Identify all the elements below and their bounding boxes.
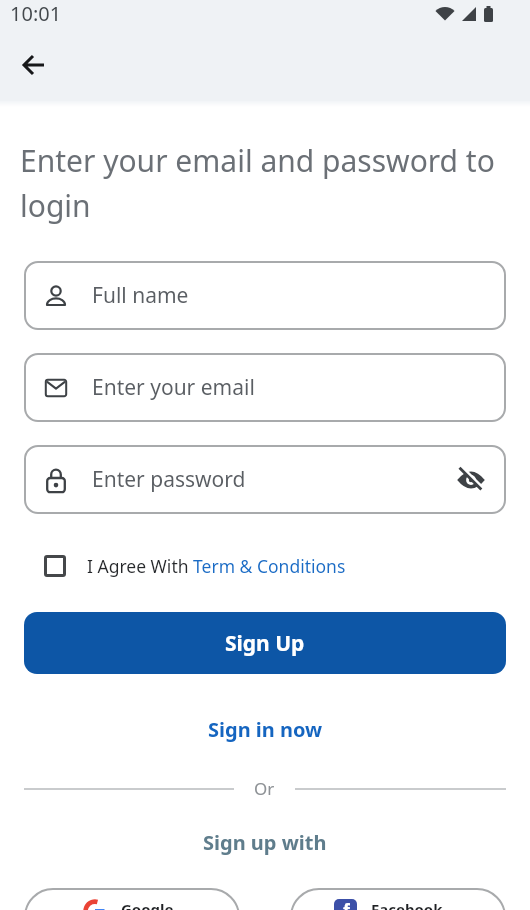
button[interactable]: Sign Up xyxy=(24,612,506,674)
staticText: Enter password xyxy=(92,465,246,494)
button[interactable] xyxy=(12,43,56,87)
staticText: Enter your email and password to login xyxy=(20,140,502,225)
staticText: 10:01 xyxy=(10,0,62,27)
button[interactable]: Enter password xyxy=(24,445,506,514)
staticText: Sign in now xyxy=(208,716,323,743)
staticText: I Agree With Term & Conditions xyxy=(87,554,346,578)
button[interactable]: f xyxy=(290,888,506,910)
staticText: Enter your email xyxy=(92,373,255,402)
button[interactable] xyxy=(449,458,493,502)
button[interactable]: Full name xyxy=(24,261,506,330)
staticText: Google xyxy=(121,899,174,910)
button[interactable]: I Agree With Term & Conditions xyxy=(44,554,346,578)
button[interactable]: Enter your email xyxy=(24,353,506,422)
staticText: f xyxy=(343,899,350,910)
button[interactable]: Sign in now xyxy=(204,712,327,747)
staticText: Full name xyxy=(92,281,189,310)
staticText: Sign Up xyxy=(225,629,305,658)
staticText: Or xyxy=(254,777,275,800)
staticText: Facebook xyxy=(371,899,443,910)
staticText: Sign up with xyxy=(203,829,327,856)
button[interactable]: Google xyxy=(24,888,240,910)
